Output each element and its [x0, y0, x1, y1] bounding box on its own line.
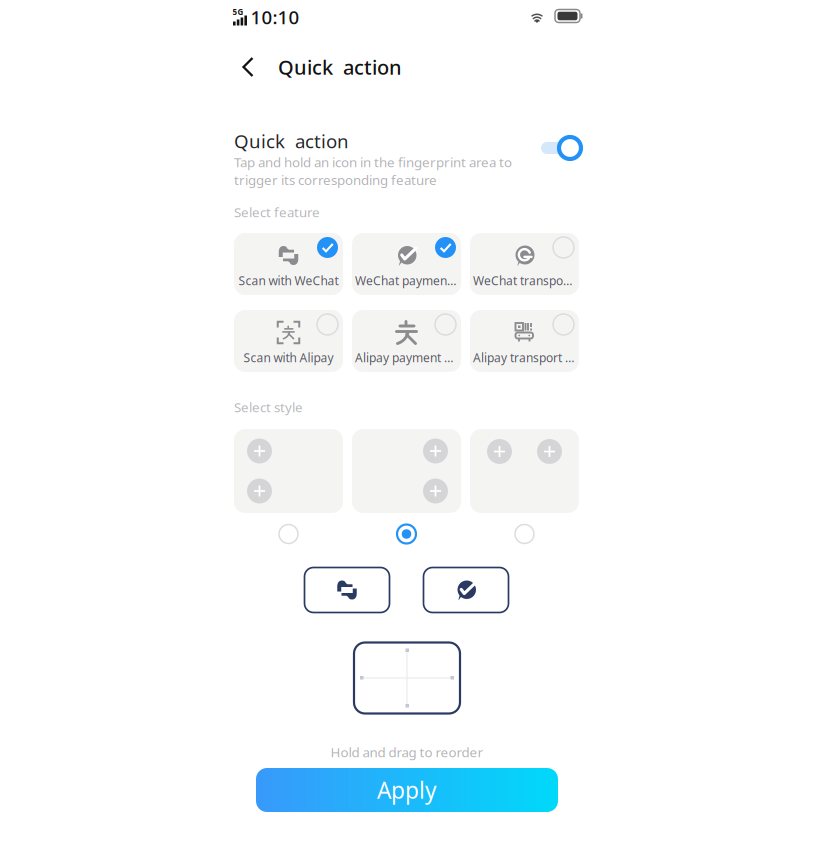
button[interactable]: WeChat payment shortcut: [423, 567, 508, 612]
button[interactable]: WeChat transport card: [470, 233, 579, 295]
staticText: Scan with WeChat: [238, 272, 338, 288]
staticText: 5G: [232, 7, 243, 17]
staticText: Alipay transport code: [473, 349, 576, 365]
button[interactable]: Select style one: [266, 519, 310, 549]
staticText: Quick action: [234, 129, 349, 153]
staticText: Hold and drag to reorder: [330, 743, 483, 761]
staticText: Select feature: [234, 203, 320, 221]
button[interactable]: Style one: [234, 429, 343, 513]
button[interactable]: Apply: [256, 768, 558, 812]
button[interactable]: Select style two: [384, 519, 428, 549]
button[interactable]: Scan with WeChat: [234, 233, 343, 295]
button[interactable]: Scan with Alipay: [234, 310, 343, 372]
button[interactable]: Back: [230, 45, 266, 89]
button[interactable]: Style two: [352, 429, 461, 513]
staticText: Select style: [234, 398, 303, 416]
button[interactable]: Quick action, on: [540, 135, 584, 161]
button[interactable]: Scan with WeChat shortcut: [304, 567, 389, 612]
button[interactable]: Style three: [470, 429, 579, 513]
button[interactable]: Alipay transport code: [470, 310, 579, 372]
staticText: Tap and hold an icon in the fingerprint …: [234, 153, 512, 189]
staticText: Quick action: [278, 54, 402, 80]
staticText: Alipay payment code: [355, 349, 458, 365]
button[interactable]: WeChat payment code: [352, 233, 461, 295]
staticText: Scan with Alipay: [243, 349, 333, 365]
staticText: Apply: [377, 775, 437, 805]
staticText: WeChat transport card: [473, 272, 576, 288]
button[interactable]: Alipay payment code: [352, 310, 461, 372]
staticText: 10:10: [250, 5, 299, 29]
staticText: WeChat payment code: [355, 272, 458, 288]
button[interactable]: Select style three: [502, 519, 546, 549]
